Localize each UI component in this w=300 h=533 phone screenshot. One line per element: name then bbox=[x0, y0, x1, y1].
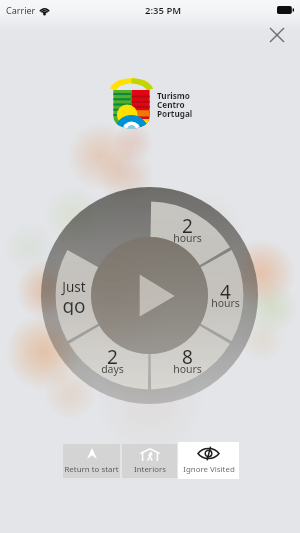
button[interactable]: Return to start bbox=[63, 444, 120, 478]
button[interactable]: Interiors bbox=[122, 444, 177, 478]
staticText: Just bbox=[62, 278, 86, 296]
staticText: days bbox=[101, 362, 124, 376]
button[interactable]: Ignore Visited bbox=[178, 442, 239, 479]
button[interactable] bbox=[159, 210, 215, 250]
button[interactable] bbox=[46, 275, 102, 315]
staticText: hours bbox=[211, 296, 240, 310]
staticText: hours bbox=[173, 231, 202, 245]
staticText: go bbox=[62, 293, 86, 315]
button[interactable] bbox=[84, 341, 140, 381]
button[interactable] bbox=[159, 341, 215, 381]
staticText: hours bbox=[173, 362, 202, 376]
staticText: Return to start bbox=[64, 464, 119, 475]
staticText: Ignore Visited bbox=[183, 464, 235, 475]
staticText: Turismo Centro Portugal bbox=[157, 90, 193, 119]
staticText: 2 bbox=[182, 213, 193, 235]
staticText: Carrier bbox=[6, 4, 36, 16]
staticText: 2:35 PM bbox=[145, 4, 182, 17]
staticText: 8 bbox=[182, 344, 193, 366]
staticText: 2 bbox=[107, 344, 118, 366]
staticText: 4 bbox=[220, 279, 231, 301]
staticText: Interiors bbox=[134, 464, 166, 475]
button[interactable]: Close bbox=[262, 20, 292, 50]
button[interactable] bbox=[197, 276, 253, 316]
